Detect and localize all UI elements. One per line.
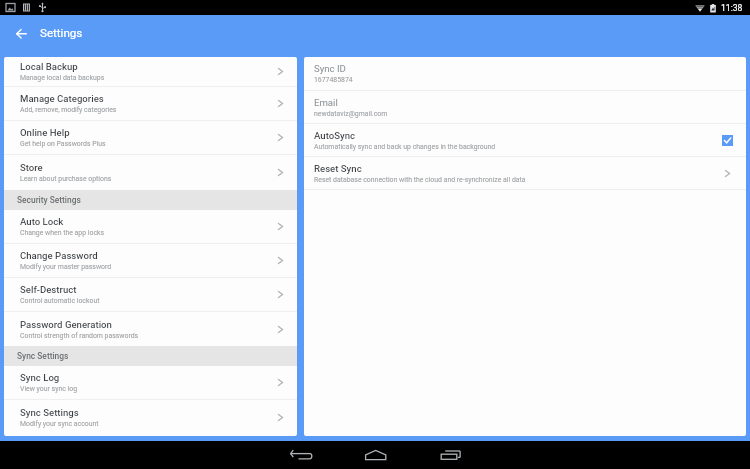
button[interactable]: Recent apps: [413, 441, 488, 469]
staticText: AutoSync: [314, 130, 356, 141]
button[interactable]: Auto Lock: [4, 210, 297, 243]
staticText: Email: [314, 97, 338, 108]
staticText: Sync ID: [314, 63, 346, 74]
button[interactable]: Home: [338, 441, 413, 469]
staticText: Add, remove, modify categories: [20, 106, 117, 114]
staticText: Password Generation: [20, 319, 112, 330]
staticText: Sync Log: [20, 372, 60, 383]
button[interactable]: Change Password: [4, 244, 297, 277]
button[interactable]: AutoSync: [304, 124, 746, 156]
staticText: newdataviz@gmail.com: [314, 110, 388, 118]
staticText: Security Settings: [17, 195, 81, 205]
staticText: Reset database connection with the cloud…: [314, 176, 526, 184]
button[interactable]: Back: [0, 15, 40, 57]
button[interactable]: Sync Log: [4, 366, 297, 399]
staticText: 1677485874: [314, 76, 353, 84]
button[interactable]: Reset Sync: [304, 157, 746, 189]
button[interactable]: Online Help: [4, 121, 297, 154]
staticText: Self-Destruct: [20, 284, 77, 295]
button[interactable]: Password Generation: [4, 312, 297, 346]
button[interactable]: Email: [304, 91, 746, 123]
staticText: Automatically sync and back up changes i…: [314, 143, 496, 151]
staticText: Change Password: [20, 250, 98, 261]
button[interactable]: AutoSync enabled: [722, 135, 733, 146]
staticText: Manage local data backups: [20, 74, 105, 82]
button[interactable]: Manage Categories: [4, 87, 297, 120]
staticText: Control automatic lockout: [20, 297, 100, 305]
staticText: Change when the app locks: [20, 229, 105, 237]
staticText: View your sync log: [20, 385, 77, 393]
button[interactable]: Local Backup: [4, 57, 297, 86]
staticText: Sync Settings: [17, 351, 69, 361]
staticText: 11:38: [721, 3, 743, 13]
staticText: Manage Categories: [20, 93, 104, 104]
staticText: Store: [20, 162, 43, 173]
staticText: Settings: [40, 26, 83, 40]
staticText: Get help on Passwords Plus: [20, 140, 106, 148]
staticText: Auto Lock: [20, 216, 64, 227]
staticText: Modify your master password: [20, 263, 112, 271]
button[interactable]: Sync ID: [304, 57, 746, 90]
staticText: Online Help: [20, 127, 70, 138]
staticText: Learn about purchase options: [20, 175, 112, 183]
staticText: Local Backup: [20, 61, 78, 72]
button[interactable]: Store: [4, 155, 297, 190]
button[interactable]: Self-Destruct: [4, 278, 297, 311]
button[interactable]: Sync Settings: [4, 400, 297, 435]
button[interactable]: Back: [263, 441, 338, 469]
staticText: Sync Settings: [20, 407, 79, 418]
staticText: Modify your sync account: [20, 420, 99, 428]
staticText: Reset Sync: [314, 163, 362, 174]
staticText: Control strength of random passwords: [20, 332, 139, 340]
